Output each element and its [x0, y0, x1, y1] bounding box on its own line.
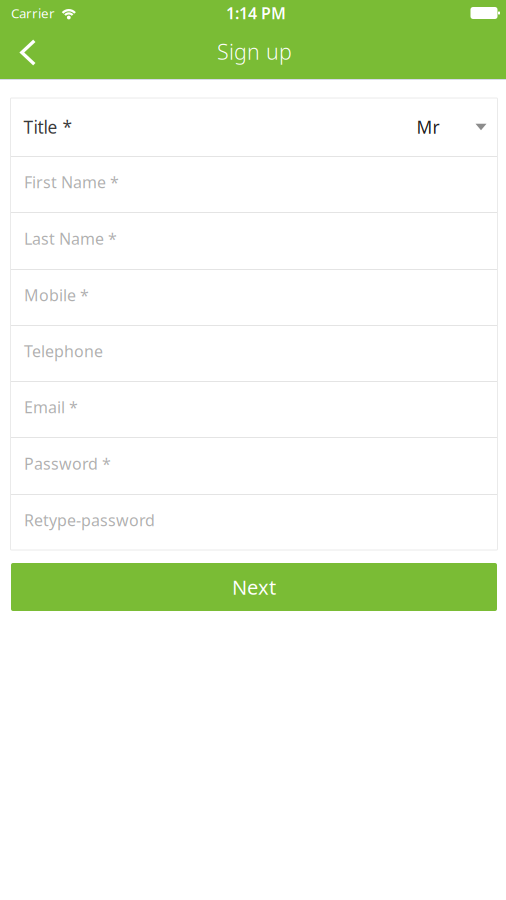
staticText: Next: [232, 574, 276, 600]
staticText: First Name *: [24, 171, 119, 193]
button[interactable]: Title *: [10, 98, 497, 156]
staticText: Mobile *: [24, 284, 89, 306]
button[interactable]: Back: [3, 30, 36, 74]
button[interactable]: Telephone: [10, 326, 497, 381]
staticText: Email *: [24, 396, 78, 418]
button[interactable]: Next: [11, 563, 497, 611]
button[interactable]: Email *: [10, 382, 497, 437]
staticText: Last Name *: [24, 228, 117, 249]
staticText: 1:14 PM: [226, 2, 286, 24]
staticText: Carrier: [11, 4, 55, 22]
staticText: Sign up: [217, 37, 292, 66]
button[interactable]: First Name *: [10, 157, 497, 212]
staticText: Title *: [23, 115, 72, 138]
button[interactable]: Last Name *: [10, 213, 497, 269]
staticText: Password *: [24, 453, 111, 474]
staticText: Retype-password: [24, 509, 155, 531]
button[interactable]: Password *: [10, 438, 497, 494]
staticText: Mr: [416, 115, 439, 138]
button[interactable]: Retype-password: [10, 495, 497, 550]
staticText: Telephone: [24, 340, 103, 362]
button[interactable]: Mobile *: [10, 270, 497, 325]
